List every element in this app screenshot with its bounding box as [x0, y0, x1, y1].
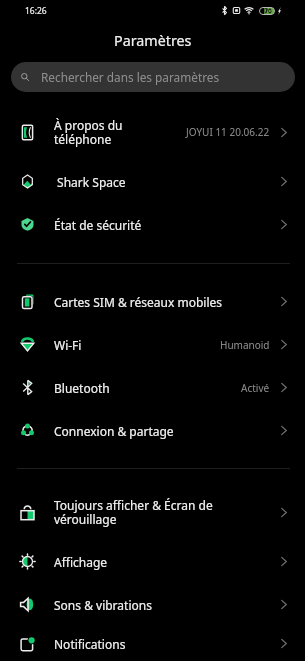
staticText: État de sécurité: [54, 217, 268, 233]
button[interactable]: Connexion & partage: [0, 409, 305, 452]
staticText: Sons & vibrations: [54, 597, 268, 613]
staticText: Wi-Fi: [54, 337, 218, 353]
staticText: Activé: [241, 381, 270, 395]
staticText: 16:26: [25, 5, 47, 17]
button[interactable]: Cartes SIM & réseaux mobiles: [0, 280, 305, 323]
button[interactable]: Bluetooth: [0, 366, 305, 409]
staticText: Notifications: [54, 636, 268, 652]
button[interactable]: Rechercher dans les paramètres: [11, 62, 295, 92]
button[interactable]: Wi-Fi: [0, 323, 305, 366]
button[interactable]: Toujours afficher & Écran de vérouillage: [0, 484, 305, 540]
staticText: Humanoid: [220, 338, 270, 352]
staticText: Connexion & partage: [54, 423, 268, 439]
staticText: Bluetooth: [54, 380, 239, 396]
button[interactable]: Notifications: [0, 626, 305, 661]
button[interactable]: À propos du téléphone: [0, 104, 305, 160]
button[interactable]: Shark Space: [0, 160, 305, 203]
staticText: Paramètres: [114, 31, 192, 50]
button[interactable]: État de sécurité: [0, 203, 305, 246]
staticText: Shark Space: [54, 174, 268, 190]
staticText: Rechercher dans les paramètres: [41, 69, 220, 85]
button[interactable]: Sons & vibrations: [0, 583, 305, 626]
button[interactable]: Affichage: [0, 540, 305, 583]
staticText: JOYUI 11 20.06.22: [186, 125, 270, 139]
staticText: Affichage: [54, 554, 268, 570]
staticText: À propos du téléphone: [54, 117, 184, 147]
staticText: Toujours afficher & Écran de vérouillage: [54, 497, 268, 527]
staticText: Cartes SIM & réseaux mobiles: [54, 294, 268, 310]
